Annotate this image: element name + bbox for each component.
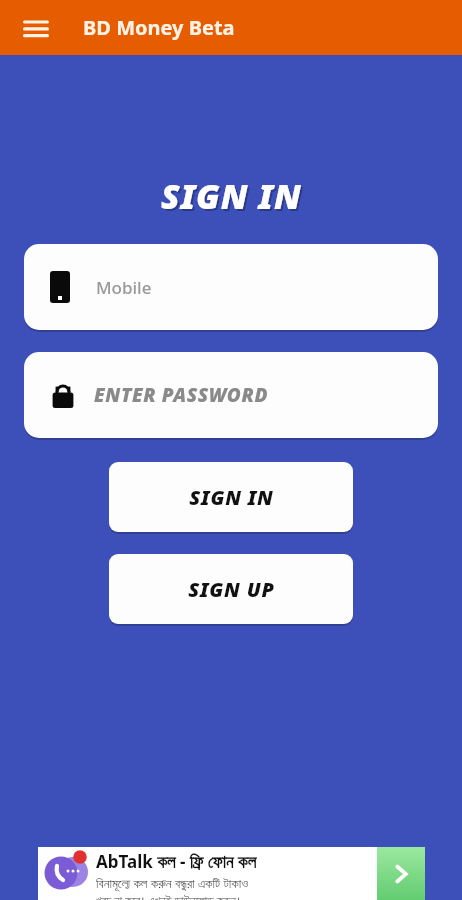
staticText: বিনামূল্যে কল করুন বন্ধুরা একটি টাকাও <box>96 874 249 892</box>
button[interactable]: Mobile <box>24 244 438 330</box>
button[interactable]: Open ad <box>377 847 425 900</box>
staticText: AbTalk কল - ফ্রি ফোন কল <box>96 850 256 873</box>
staticText: Mobile <box>96 276 152 299</box>
staticText: BD Money Beta <box>83 14 235 41</box>
button[interactable]: ENTER PASSWORD <box>24 352 438 438</box>
button[interactable]: Advertisement: AbTalk call <box>38 847 425 900</box>
button[interactable]: SIGN UP <box>109 554 353 624</box>
staticText: SIGN IN <box>161 173 302 219</box>
button[interactable]: SIGN IN <box>109 462 353 532</box>
button[interactable]: Open navigation menu <box>14 6 58 50</box>
staticText: ENTER PASSWORD <box>94 382 269 408</box>
staticText: খরচ না করে। এখনই ডাউনলোড করুন। <box>96 892 241 900</box>
staticText: SIGN IN <box>163 175 304 221</box>
staticText: SIGN IN <box>189 484 274 511</box>
staticText: SIGN UP <box>188 576 275 603</box>
